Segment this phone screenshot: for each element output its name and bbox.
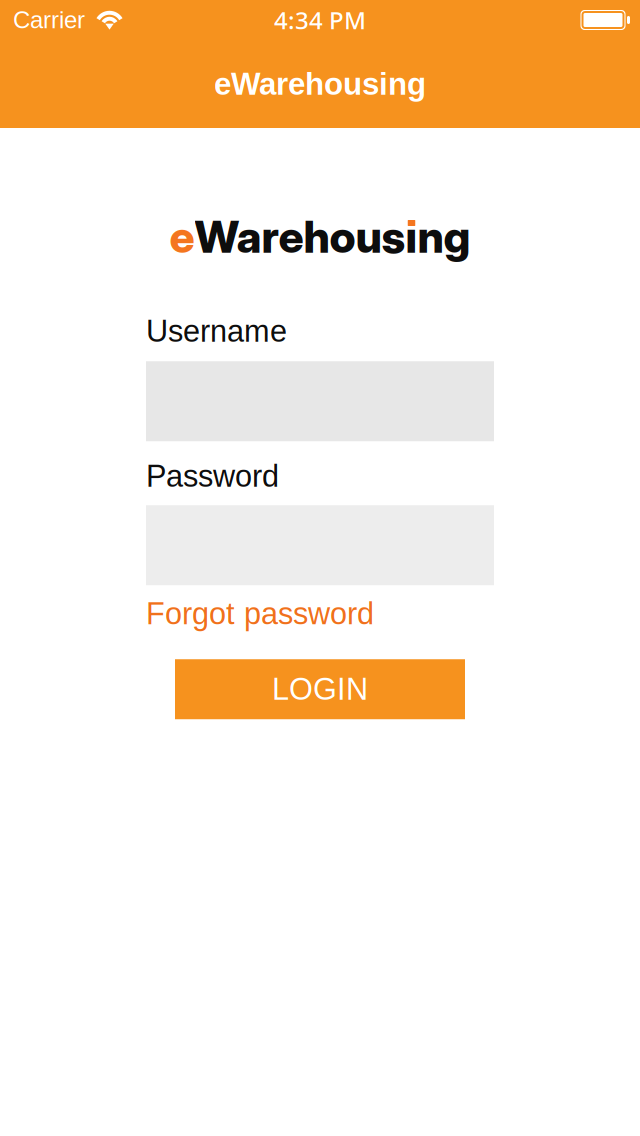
button[interactable]: Forgot password — [146, 597, 494, 630]
staticText: Forgot password — [146, 597, 374, 631]
staticText: Carrier — [13, 7, 85, 33]
staticText: eWarehousing — [214, 66, 426, 101]
staticText: Username — [146, 314, 287, 348]
staticText: Warehous — [194, 210, 405, 263]
staticText: ng — [417, 210, 470, 263]
staticText: e — [169, 210, 194, 263]
staticText: i — [405, 210, 417, 263]
staticText: Password — [146, 459, 279, 493]
staticText: LOGIN — [272, 672, 368, 706]
button[interactable]: LOGIN — [175, 659, 465, 719]
staticText: 4:34 PM — [274, 4, 366, 36]
